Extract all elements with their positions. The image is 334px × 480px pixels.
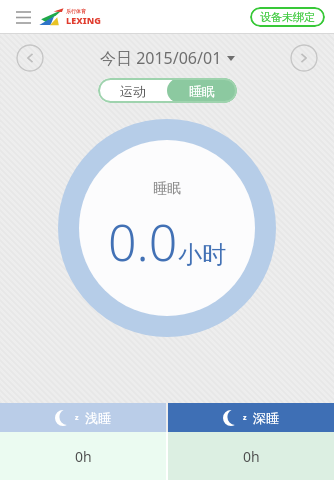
button[interactable]: Next day xyxy=(290,44,318,72)
button[interactable]: 睡眠 xyxy=(167,78,237,103)
staticText: z xyxy=(75,413,79,423)
staticText: 设备未绑定 xyxy=(260,10,315,24)
button[interactable]: Previous day xyxy=(16,44,44,72)
button[interactable]: 设备未绑定 xyxy=(250,7,325,27)
staticText: 运动 xyxy=(120,83,146,99)
staticText: 0h xyxy=(243,447,260,466)
staticText: 0h xyxy=(75,447,92,466)
staticText: 小时 xyxy=(178,240,226,270)
button[interactable]: 乐行体育 xyxy=(38,8,101,26)
button[interactable]: Menu xyxy=(11,5,35,29)
staticText: 乐行体育 xyxy=(66,8,86,14)
staticText: z xyxy=(243,413,247,423)
staticText: LEXING xyxy=(66,14,101,26)
button[interactable]: 0h xyxy=(168,432,334,480)
staticText: 深睡 xyxy=(253,410,279,426)
button[interactable]: Light sleep xyxy=(0,403,166,432)
button[interactable]: 0h xyxy=(0,432,166,480)
staticText: 浅睡 xyxy=(85,410,111,426)
staticText: 0.0 xyxy=(108,208,178,276)
button[interactable]: Deep sleep xyxy=(168,403,334,432)
staticText: 睡眠 xyxy=(153,180,181,198)
staticText: 今日 2015/06/01 xyxy=(100,47,222,69)
staticText: 睡眠 xyxy=(189,83,215,99)
button[interactable]: 今日 2015/06/01 xyxy=(100,47,235,69)
button[interactable]: 运动 xyxy=(98,78,167,103)
